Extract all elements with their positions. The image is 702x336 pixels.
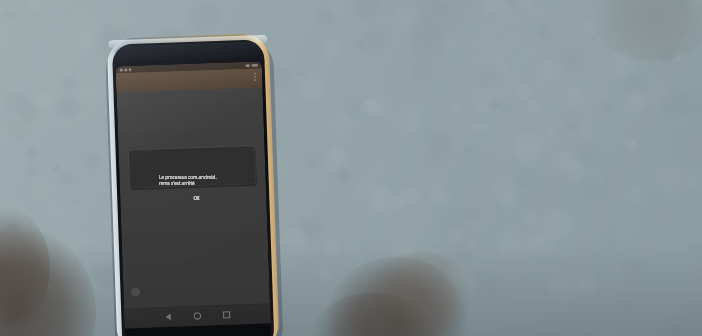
button[interactable]: Home	[178, 298, 200, 312]
staticText: OK	[193, 195, 200, 201]
button[interactable]: Back	[146, 298, 168, 312]
button[interactable]: Recent apps	[210, 298, 232, 312]
staticText: Le processus com.android. mms s'est arrê…	[159, 174, 217, 186]
button[interactable]: OK	[186, 193, 206, 202]
